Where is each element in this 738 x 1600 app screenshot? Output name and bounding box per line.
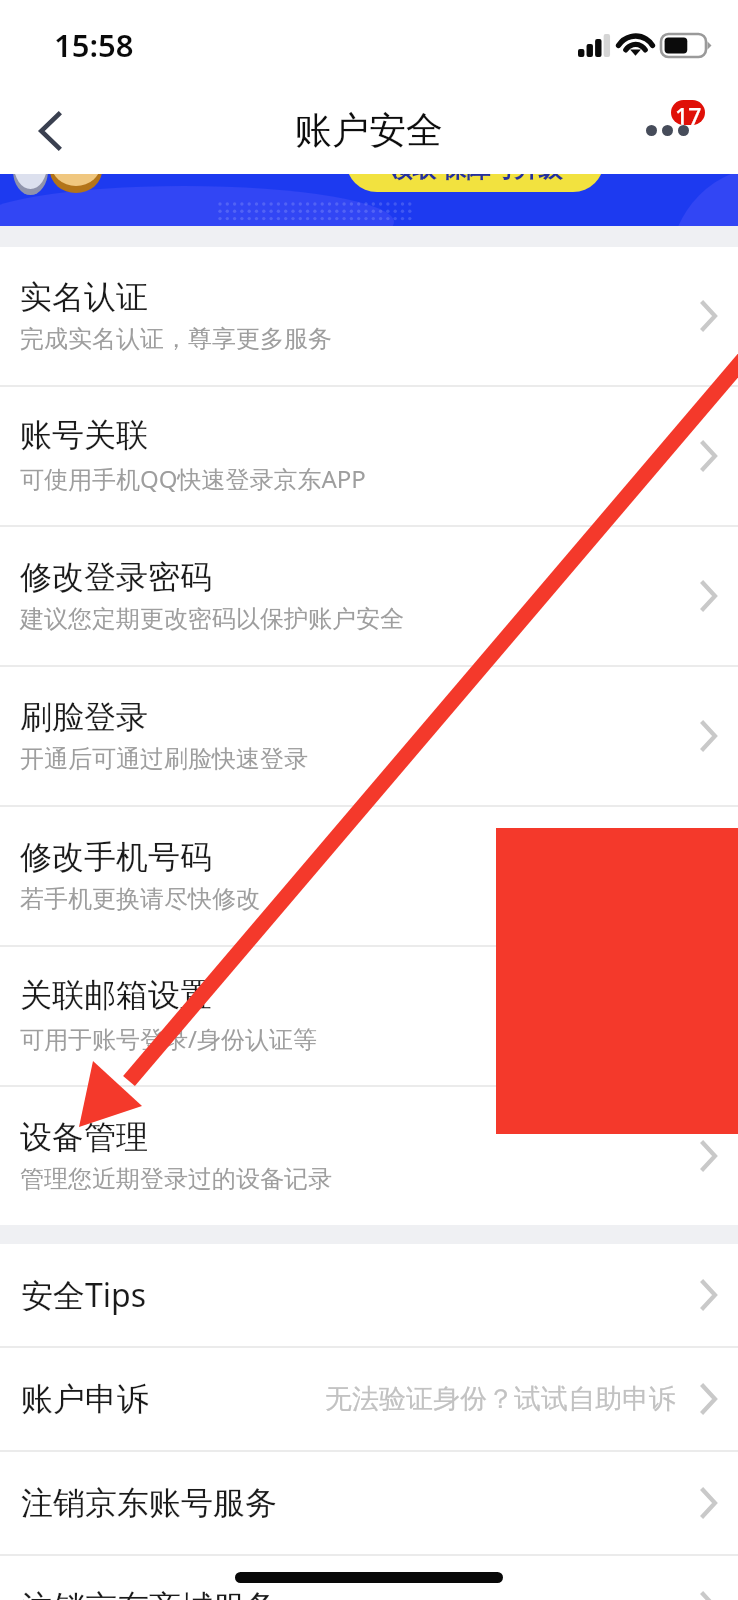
button[interactable]: 修改登录密码 [0,527,738,665]
staticText: 刷脸登录 [20,697,148,737]
staticText: 关联邮箱设置 [20,975,212,1015]
button[interactable]: 修改手机号码 [0,807,738,945]
button[interactable]: 刷脸登录 [0,667,738,805]
staticText: 完成实名认证，尊享更多服务 [20,324,332,354]
staticText: 账号关联 [20,415,148,455]
button[interactable]: More options [628,88,738,174]
staticText: 修改登录密码 [20,557,212,597]
staticText: 账户安全 [295,107,443,154]
staticText: 若手机更换请尽快修改 [20,884,260,914]
button[interactable]: 注销京东账号服务 [0,1452,738,1554]
staticText: 实名认证 [20,277,148,317]
staticText: 可用于账号登录/身份认证等 [20,1022,317,1055]
staticText: 注销京东账号服务 [21,1483,277,1523]
staticText: 可使用手机QQ快速登录京东APP [20,462,366,495]
staticText: 领取 保障号升级 [388,174,563,184]
staticText: 修改手机号码 [20,837,212,877]
staticText: 15:58 [54,24,134,66]
staticText: 17 [675,100,702,125]
staticText: 无法验证身份？试试自助申诉 [325,1382,676,1416]
button[interactable]: 关联邮箱设置 [0,947,738,1085]
staticText: 建议您定期更改密码以保护账户安全 [20,604,404,634]
button[interactable]: 注销京东商城服务 [0,1556,738,1600]
staticText: 注销京东商城服务 [21,1587,277,1600]
button[interactable]: 账户申诉 [0,1348,738,1450]
staticText: 设备管理 [20,1117,148,1157]
button[interactable]: 账号关联 [0,387,738,525]
button[interactable]: 安全Tips [0,1244,738,1346]
button[interactable]: 实名认证 [0,247,738,385]
button[interactable]: 领取 保障号升级 [346,174,604,192]
staticText: 开通后可通过刷脸快速登录 [20,744,308,774]
staticText: 安全Tips [21,1273,147,1317]
staticText: 管理您近期登录过的设备记录 [20,1164,332,1194]
button[interactable]: Back [14,95,86,167]
button[interactable]: 设备管理 [0,1087,738,1225]
staticText: 账户申诉 [21,1379,149,1419]
